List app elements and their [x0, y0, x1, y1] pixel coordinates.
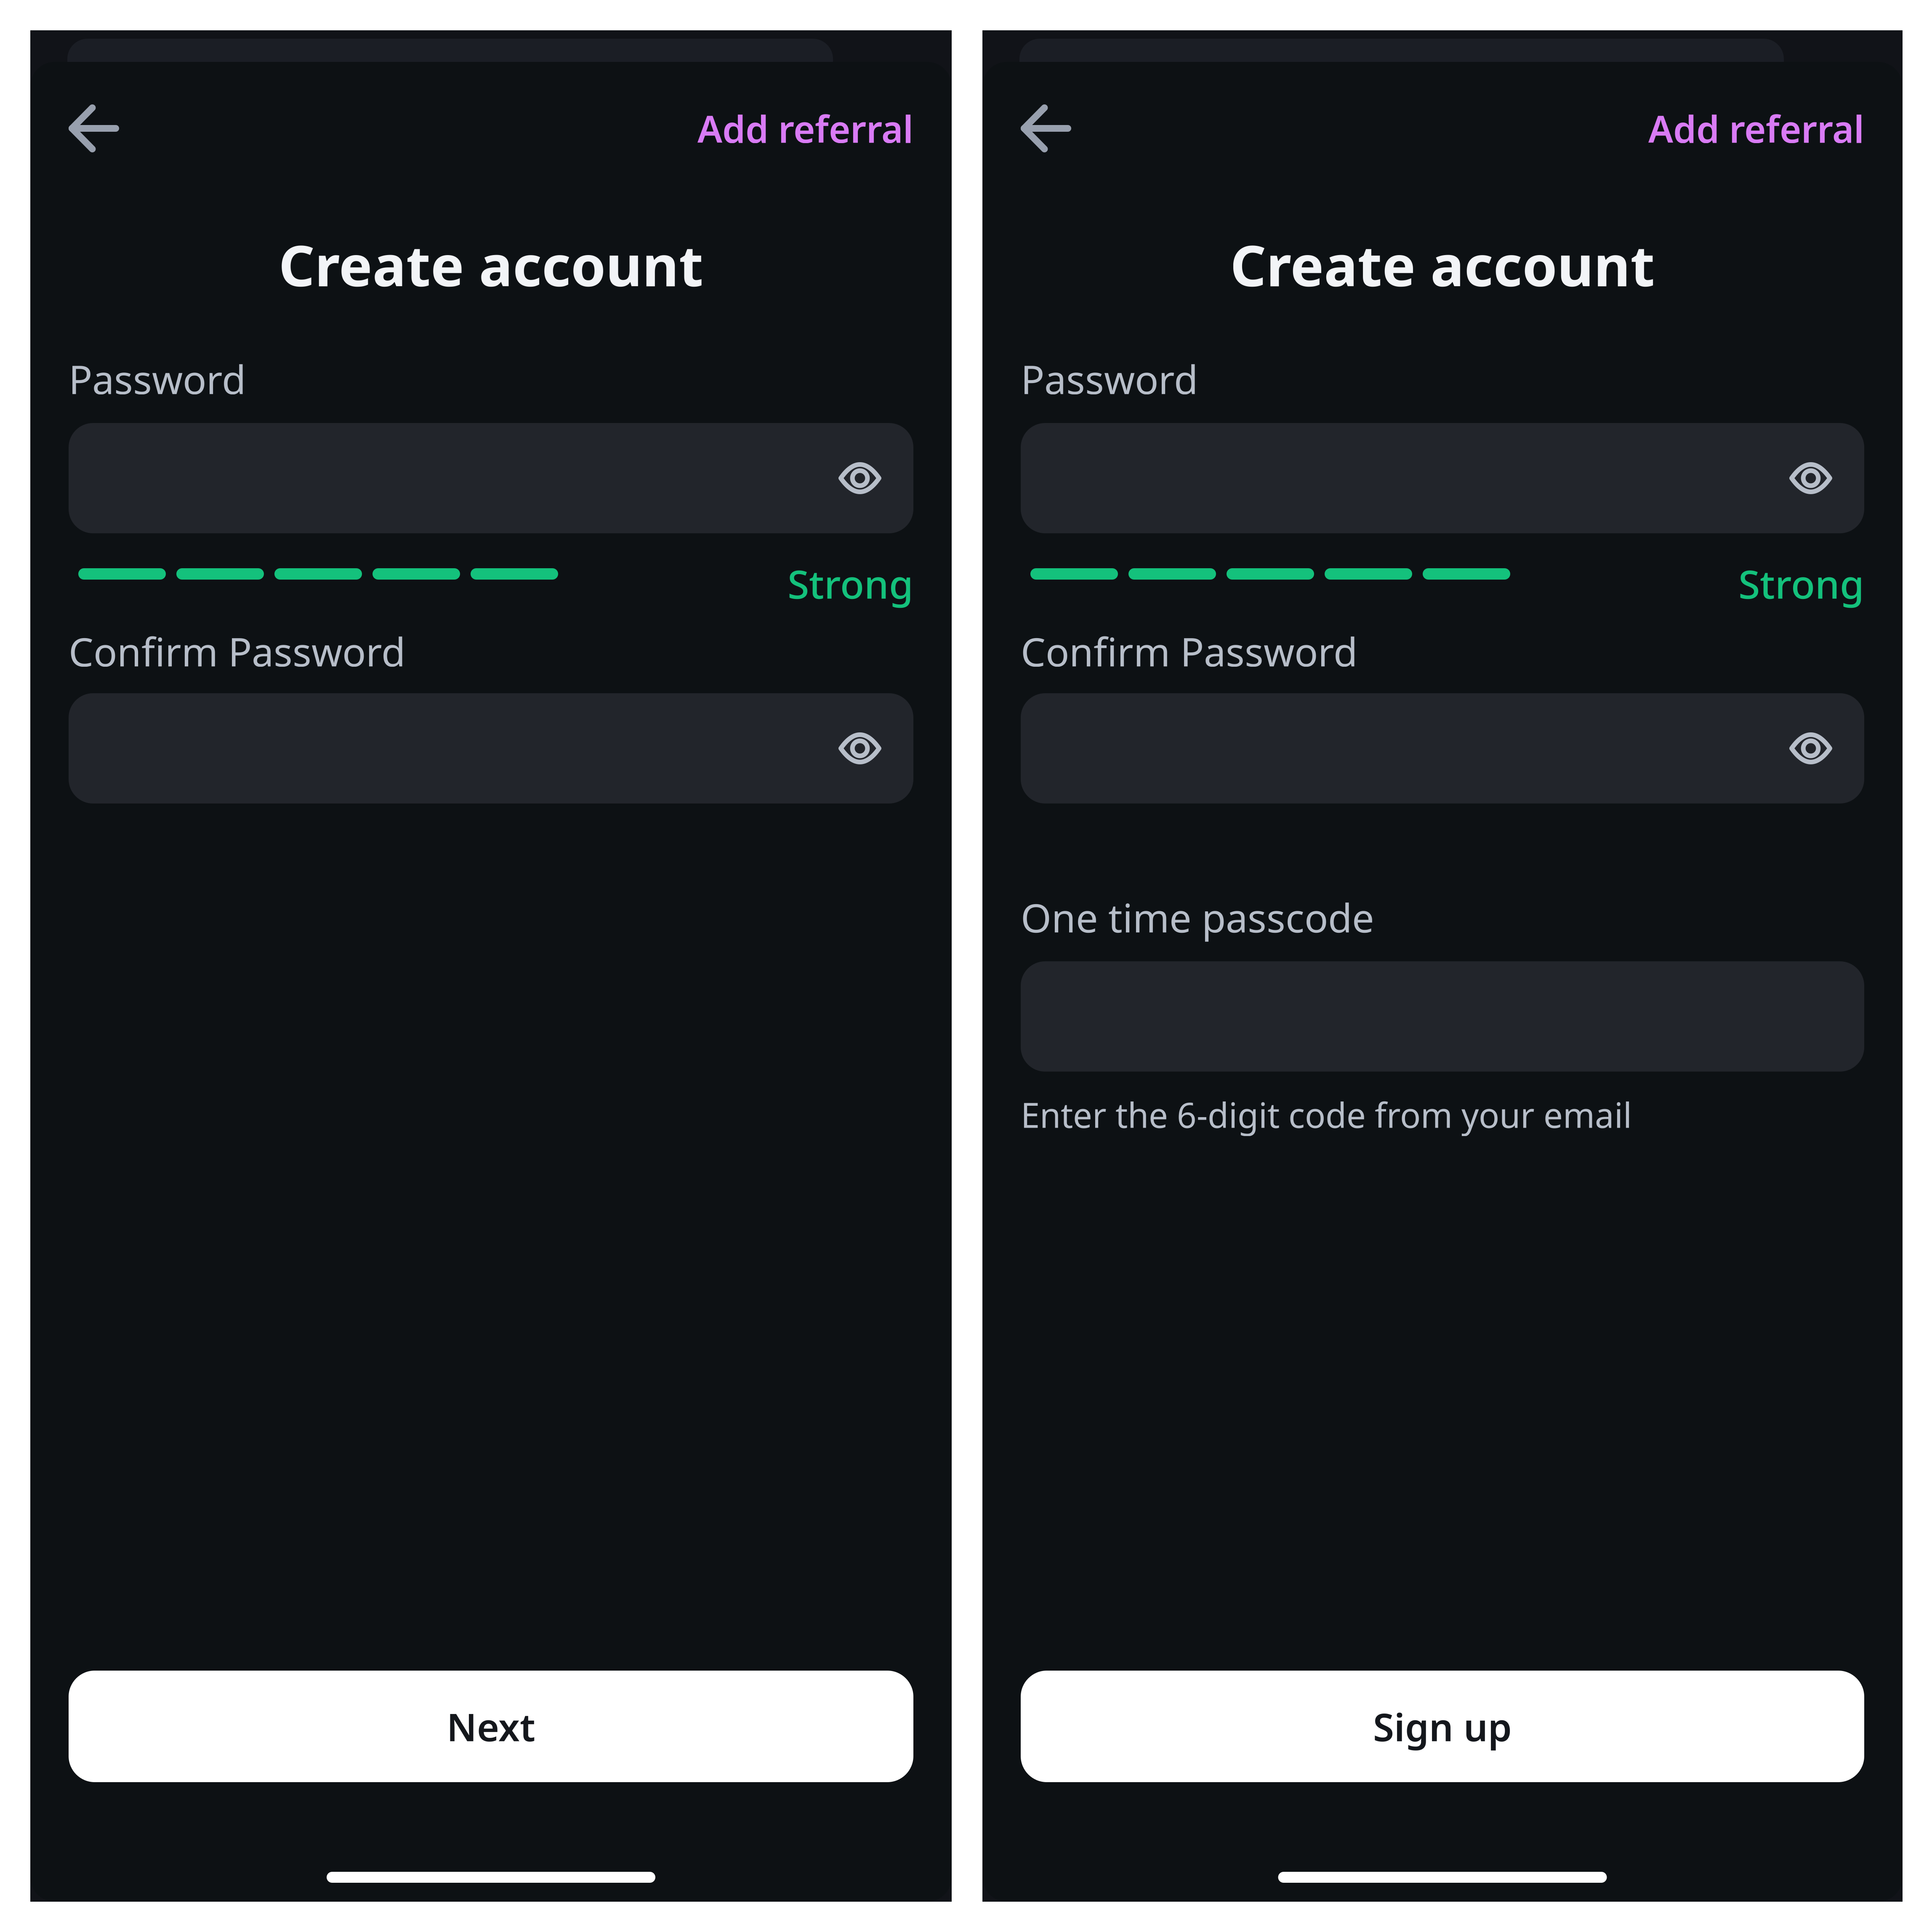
staticText: Create account [1230, 227, 1655, 302]
button[interactable]: Show password [806, 423, 913, 533]
button[interactable]: Show password [1757, 423, 1864, 533]
staticText: Password [69, 353, 246, 405]
staticText: Confirm Password [1021, 625, 1357, 677]
staticText: Enter the 6-digit code from your email [1021, 1092, 1632, 1137]
staticText: Add referral [1648, 104, 1864, 153]
staticText: One time passcode [1021, 891, 1374, 943]
staticText: Confirm Password [69, 625, 405, 677]
staticText: Strong [1738, 557, 1864, 609]
button[interactable]: Next [69, 1671, 913, 1782]
button[interactable]: Back [69, 104, 119, 152]
staticText: Sign up [1373, 1701, 1512, 1752]
button[interactable]: Sign up [1021, 1671, 1864, 1782]
staticText: Next [447, 1701, 535, 1752]
button[interactable]: Add referral [697, 104, 913, 153]
button[interactable]: Back [1021, 104, 1071, 152]
staticText: Create account [279, 227, 703, 302]
staticText: Strong [788, 557, 913, 609]
button[interactable]: Show password [1757, 693, 1864, 803]
button[interactable]: Add referral [1648, 104, 1864, 153]
staticText: Add referral [697, 104, 913, 153]
button[interactable]: Show password [806, 693, 913, 803]
staticText: Password [1021, 353, 1198, 405]
